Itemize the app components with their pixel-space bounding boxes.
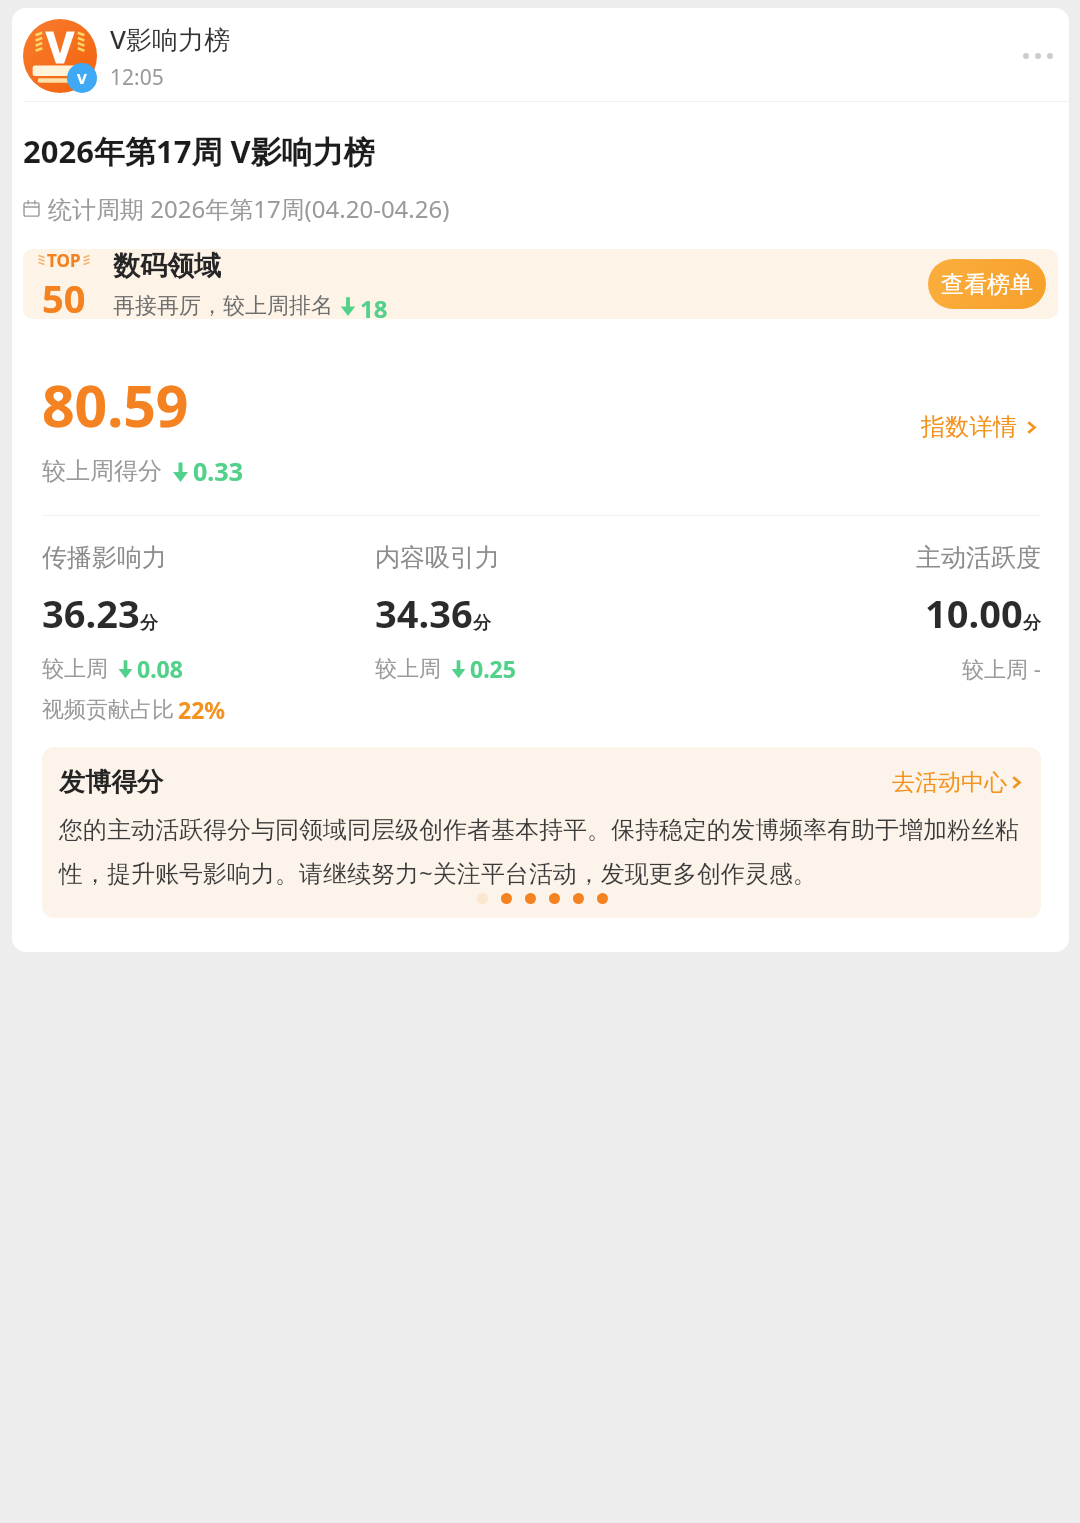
staticText: 再接再厉，较上周排名 bbox=[113, 292, 333, 319]
staticText: 查看榜单 bbox=[941, 270, 1033, 299]
staticText: 较上周 bbox=[375, 655, 441, 683]
staticText: 2026年第17周 V影响力榜 bbox=[23, 130, 375, 172]
staticText: 分 bbox=[1023, 612, 1041, 635]
staticText: 分 bbox=[473, 612, 491, 635]
staticText: 0.33 bbox=[193, 454, 243, 488]
staticText: 视频贡献占比 bbox=[42, 696, 174, 724]
staticText: 指数详情 bbox=[921, 412, 1017, 442]
button[interactable]: V bbox=[23, 19, 97, 93]
staticText: V影响力榜 bbox=[110, 21, 230, 57]
button[interactable]: 发博得分 bbox=[42, 747, 1041, 918]
staticText: 50 bbox=[42, 272, 86, 319]
staticText: TOP bbox=[47, 249, 81, 272]
staticText: 10.00 bbox=[925, 587, 1023, 639]
staticText: 分 bbox=[140, 612, 158, 635]
staticText: 传播影响力 bbox=[42, 542, 167, 573]
staticText: 统计周期 2026年第17周(04.20-04.26) bbox=[48, 192, 450, 225]
staticText: 较上周 - bbox=[962, 653, 1041, 683]
button[interactable]: 指数详情 bbox=[921, 412, 1041, 442]
staticText: 您的主动活跃得分与同领域同层级创作者基本持平。保持稳定的发博频率有助于增加粉丝粘… bbox=[59, 815, 1026, 889]
staticText: 内容吸引力 bbox=[375, 542, 500, 573]
staticText: 36.23 bbox=[42, 587, 140, 639]
button[interactable]: V影响力榜 bbox=[110, 21, 1017, 92]
staticText: 数码领域 bbox=[113, 249, 221, 283]
staticText: 12:05 bbox=[110, 63, 164, 92]
staticText: 较上周 bbox=[42, 655, 108, 683]
staticText: V bbox=[77, 68, 87, 88]
staticText: 主动活跃度 bbox=[916, 542, 1041, 573]
staticText: 34.36 bbox=[375, 587, 473, 639]
staticText: 较上周得分 bbox=[42, 456, 162, 486]
staticText: 18 bbox=[360, 292, 388, 319]
staticText: 80.59 bbox=[42, 366, 189, 444]
staticText: 0.25 bbox=[470, 653, 516, 684]
staticText: 0.08 bbox=[137, 653, 183, 684]
button[interactable]: 去活动中心 bbox=[892, 768, 1026, 797]
button[interactable]: TOP bbox=[23, 249, 1058, 319]
button[interactable]: More options bbox=[1017, 35, 1059, 77]
staticText: 发博得分 bbox=[59, 766, 892, 799]
staticText: 去活动中心 bbox=[892, 768, 1007, 797]
button[interactable]: 查看榜单 bbox=[928, 259, 1046, 309]
staticText: 22% bbox=[178, 694, 226, 725]
